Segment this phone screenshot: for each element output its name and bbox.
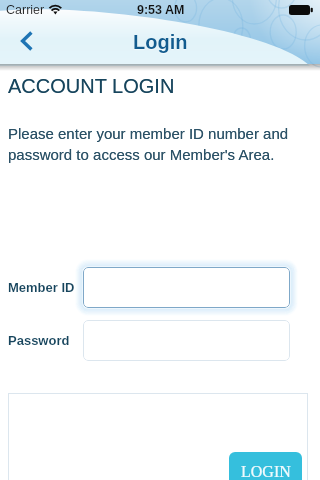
button[interactable]: Member ID input xyxy=(83,267,290,308)
staticText: Login xyxy=(133,31,188,53)
staticText: LOGIN xyxy=(241,463,291,480)
button[interactable]: Password input xyxy=(83,320,290,361)
staticText: Carrier xyxy=(6,3,45,17)
staticText: Please enter your member ID number and p… xyxy=(8,125,289,163)
staticText: ACCOUNT LOGIN xyxy=(8,75,175,97)
staticText: Password xyxy=(8,333,70,348)
button[interactable]: LOGIN xyxy=(229,452,302,480)
staticText: Member ID xyxy=(8,280,75,295)
staticText: 9:53 AM xyxy=(137,3,185,17)
button[interactable]: Back xyxy=(5,19,49,63)
staticText: Please enter your member ID number and p… xyxy=(8,125,289,163)
staticText: ACCOUNT LOGIN xyxy=(8,75,175,97)
